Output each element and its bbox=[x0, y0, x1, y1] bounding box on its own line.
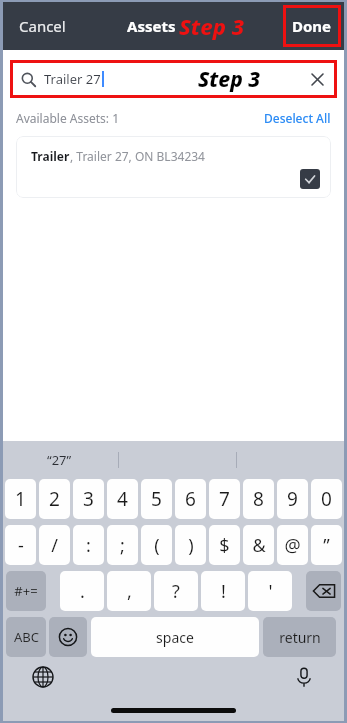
button[interactable]: #+= bbox=[6, 571, 46, 611]
staticText: ' bbox=[268, 579, 273, 604]
staticText: 2 bbox=[49, 486, 60, 512]
button[interactable]: ? bbox=[154, 571, 198, 611]
button[interactable]: Clear search bbox=[306, 68, 328, 90]
staticText: ? bbox=[172, 579, 180, 604]
staticText: / bbox=[51, 533, 58, 558]
staticText: Step 3 bbox=[179, 11, 245, 41]
button[interactable]: Cancel bbox=[3, 2, 82, 50]
button[interactable]: , bbox=[107, 571, 151, 611]
button[interactable]: Trailer bbox=[16, 136, 331, 198]
staticText: 4 bbox=[117, 486, 128, 512]
button[interactable]: Backspace bbox=[306, 571, 341, 611]
staticText: , Trailer 27, ON BL34234 bbox=[70, 148, 205, 164]
button[interactable]: 8 bbox=[243, 479, 274, 519]
staticText: ABC bbox=[14, 628, 39, 646]
button[interactable]: Dictate bbox=[290, 663, 318, 691]
staticText: Deselect All bbox=[264, 110, 331, 126]
button[interactable]: 6 bbox=[175, 479, 206, 519]
staticText: Cancel bbox=[19, 16, 66, 36]
staticText: Done bbox=[292, 16, 332, 36]
staticText: $ bbox=[219, 533, 230, 558]
button[interactable]: return bbox=[263, 617, 336, 657]
staticText: 0 bbox=[321, 486, 332, 512]
staticText: 9 bbox=[287, 486, 298, 512]
staticText: Assets bbox=[127, 16, 176, 36]
staticText: ; bbox=[120, 533, 125, 558]
staticText: ” bbox=[323, 533, 330, 558]
staticText: Step 3 bbox=[198, 65, 261, 94]
button[interactable]: ) bbox=[175, 525, 206, 565]
button[interactable]: Done bbox=[283, 5, 341, 47]
staticText: Trailer bbox=[31, 148, 70, 164]
staticText: ) bbox=[188, 533, 194, 558]
button[interactable]: 1 bbox=[5, 479, 36, 519]
button[interactable]: 4 bbox=[107, 479, 138, 519]
staticText: 5 bbox=[151, 486, 162, 512]
button[interactable]: ! bbox=[201, 571, 245, 611]
button[interactable]: : bbox=[73, 525, 104, 565]
staticText: “27” bbox=[47, 451, 72, 469]
button[interactable]: 2 bbox=[39, 479, 70, 519]
staticText: , bbox=[127, 579, 132, 604]
button[interactable]: / bbox=[39, 525, 70, 565]
button[interactable]: ” bbox=[311, 525, 342, 565]
staticText: 3 bbox=[83, 486, 94, 512]
button[interactable]: ( bbox=[141, 525, 172, 565]
staticText: Trailer 27 bbox=[44, 70, 101, 88]
button[interactable]: 0 bbox=[311, 479, 342, 519]
button[interactable]: ; bbox=[107, 525, 138, 565]
button[interactable]: 3 bbox=[73, 479, 104, 519]
staticText: - bbox=[18, 533, 24, 558]
staticText: return bbox=[279, 628, 321, 647]
button[interactable]: 5 bbox=[141, 479, 172, 519]
button[interactable]: ' bbox=[248, 571, 292, 611]
button[interactable]: Trailer 27 bbox=[10, 60, 337, 98]
staticText: #+= bbox=[14, 582, 38, 600]
staticText: 6 bbox=[185, 486, 196, 512]
staticText: & bbox=[252, 533, 266, 558]
staticText: 1 bbox=[15, 486, 26, 512]
button[interactable]: ABC bbox=[6, 617, 46, 657]
button[interactable]: space bbox=[91, 617, 259, 657]
button[interactable]: Change keyboard language bbox=[29, 663, 57, 691]
button[interactable]: Emoji bbox=[49, 617, 87, 657]
staticText: space bbox=[156, 628, 194, 647]
staticText: . bbox=[80, 579, 85, 604]
button[interactable]: - bbox=[5, 525, 36, 565]
staticText: @ bbox=[284, 533, 301, 558]
staticText: : bbox=[86, 533, 91, 558]
button[interactable]: Selected bbox=[300, 169, 320, 189]
staticText: ! bbox=[221, 579, 226, 604]
button[interactable]: 9 bbox=[277, 479, 308, 519]
staticText: Available Assets: 1 bbox=[16, 110, 119, 126]
button[interactable]: @ bbox=[277, 525, 308, 565]
button[interactable]: & bbox=[243, 525, 274, 565]
staticText: 7 bbox=[219, 486, 230, 512]
button[interactable]: $ bbox=[209, 525, 240, 565]
staticText: 8 bbox=[253, 486, 264, 512]
button[interactable]: Deselect All bbox=[264, 110, 331, 126]
button[interactable]: 7 bbox=[209, 479, 240, 519]
button[interactable]: . bbox=[60, 571, 104, 611]
staticText: ( bbox=[154, 533, 160, 558]
